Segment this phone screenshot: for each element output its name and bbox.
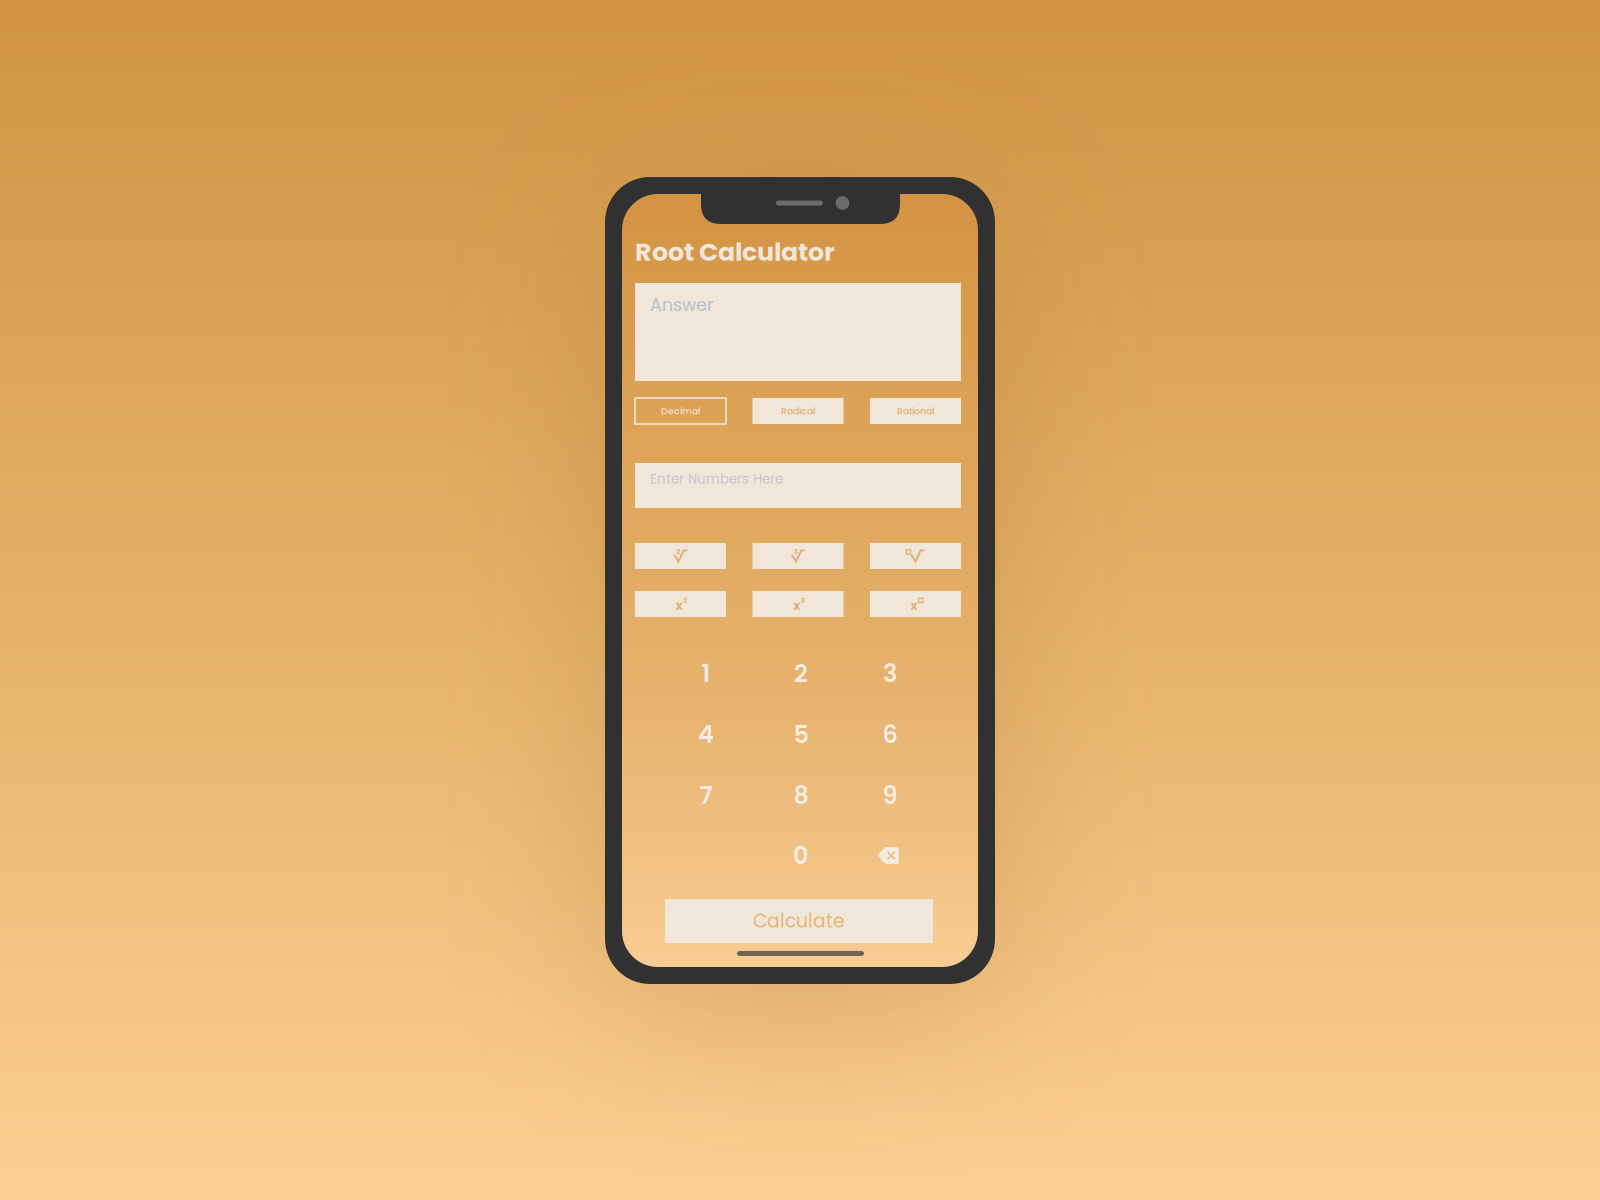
button[interactable]: 3 <box>844 643 935 704</box>
staticText: Calculate <box>753 908 845 934</box>
staticText: x <box>793 597 800 614</box>
button[interactable]: 4 <box>660 704 751 765</box>
staticText: Answer <box>650 293 713 317</box>
staticText: 2 <box>683 596 687 605</box>
staticText: x <box>911 597 918 614</box>
button[interactable]: Enter Numbers Here <box>635 463 961 508</box>
button[interactable]: 2 <box>755 643 846 704</box>
button[interactable]: 5 <box>755 704 846 765</box>
staticText: 7 <box>699 779 712 812</box>
button[interactable]: x <box>752 591 843 617</box>
staticText: 3 <box>883 657 897 690</box>
staticText: 8 <box>793 779 808 812</box>
staticText: x <box>676 597 683 614</box>
staticText: 4 <box>698 718 714 751</box>
button[interactable]: Rational <box>870 398 961 424</box>
staticText: 3 <box>801 596 805 605</box>
button[interactable]: Answer <box>635 283 961 381</box>
button[interactable] <box>870 543 961 569</box>
staticText: Decimal <box>661 404 700 418</box>
button[interactable]: 9 <box>844 765 935 826</box>
button[interactable]: 6 <box>844 704 935 765</box>
staticText: 0 <box>793 839 809 872</box>
button[interactable]: Decimal <box>635 398 726 424</box>
button[interactable]: Delete <box>844 825 935 886</box>
staticText: 3 <box>794 547 798 556</box>
button[interactable]: Radical <box>752 398 843 424</box>
staticText: 9 <box>882 779 897 812</box>
button[interactable]: x <box>635 591 726 617</box>
button[interactable]: 0 <box>755 825 846 886</box>
staticText: Root Calculator <box>635 234 835 270</box>
button[interactable]: Calculate <box>665 899 933 943</box>
button[interactable]: 8 <box>755 765 846 826</box>
staticText: Radical <box>781 404 815 418</box>
staticText: Enter Numbers Here <box>650 470 783 488</box>
button[interactable]: 7 <box>660 765 751 826</box>
staticText: 6 <box>882 718 897 751</box>
staticText: 2 <box>794 657 808 690</box>
staticText: 1 <box>701 657 710 690</box>
button[interactable]: 1 <box>660 643 751 704</box>
staticText: 2 <box>676 547 680 556</box>
button[interactable]: 2 <box>635 543 726 569</box>
button[interactable]: 3 <box>752 543 843 569</box>
button[interactable]: x <box>870 591 961 617</box>
staticText: Rational <box>897 404 934 418</box>
staticText: 5 <box>793 718 808 751</box>
